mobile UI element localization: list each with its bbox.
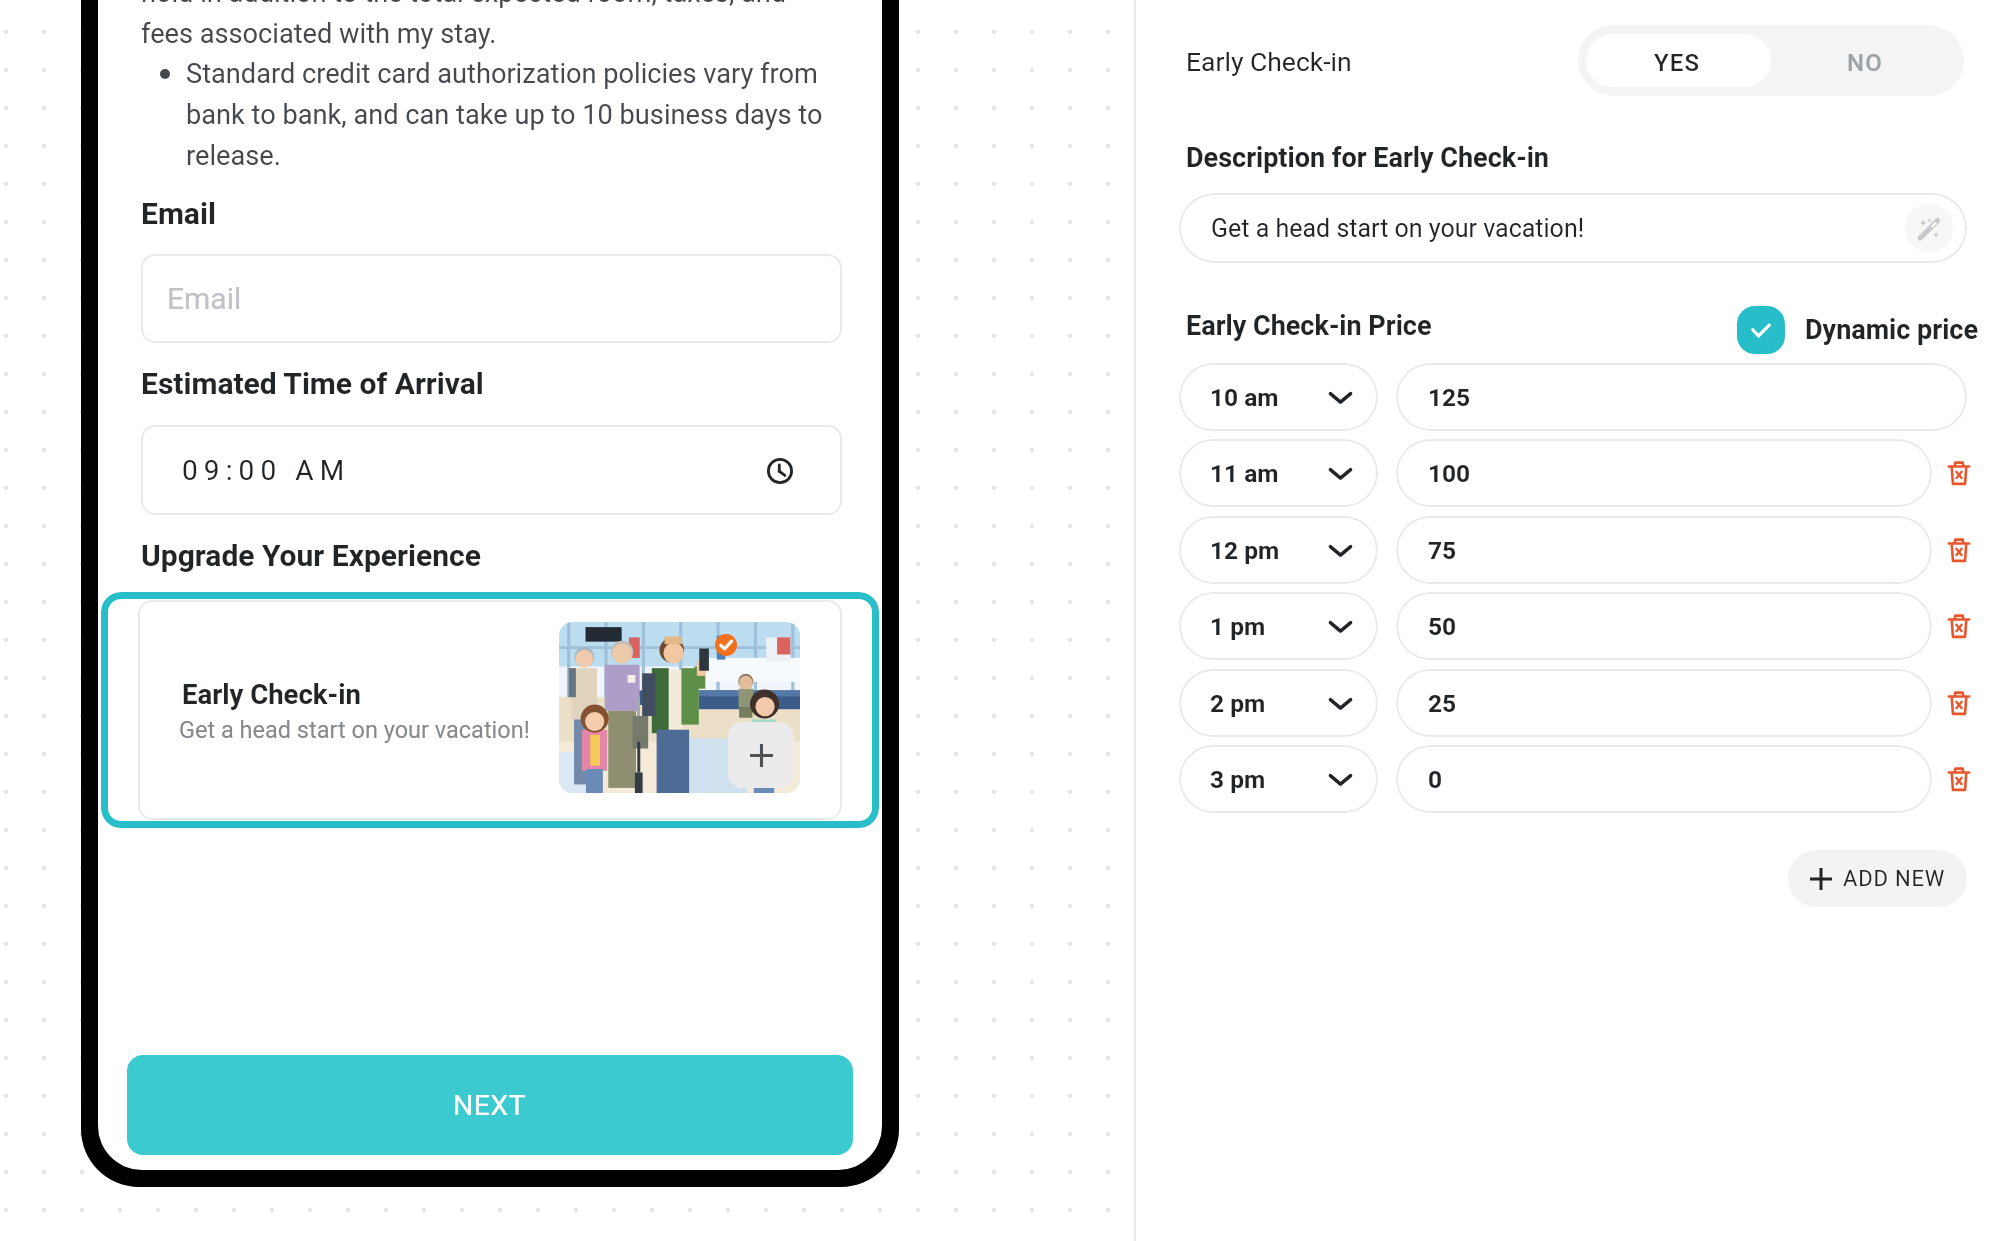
button[interactable]: Get a head start on your vacation! [1179, 193, 1967, 263]
button[interactable]: 0 [1396, 745, 1932, 813]
staticText: NO [1847, 49, 1884, 77]
button[interactable]: 125 [1396, 363, 1967, 431]
staticText: 11 am [1210, 459, 1279, 488]
staticText: ADD NEW [1843, 866, 1946, 892]
staticText: Estimated Time of Arrival [141, 366, 484, 401]
staticText: NEXT [453, 1089, 527, 1122]
button[interactable]: Add upgrade [728, 722, 794, 788]
button[interactable]: NEXT [127, 1055, 853, 1155]
staticText: 0 [1428, 765, 1443, 794]
button[interactable]: Delete [1942, 456, 1976, 490]
button[interactable]: 25 [1396, 669, 1932, 737]
button[interactable]: 75 [1396, 516, 1932, 584]
staticText: 125 [1428, 383, 1471, 412]
staticText: Email [167, 281, 242, 316]
button[interactable]: ADD NEW [1788, 850, 1967, 907]
staticText: Early Check-in [1186, 46, 1352, 77]
button[interactable]: 09:00 AM [141, 425, 842, 515]
staticText: Upgrade Your Experience [141, 538, 481, 573]
staticText: 2 pm [1210, 689, 1266, 718]
staticText: Get a head start on your vacation! [179, 716, 530, 744]
staticText: Early Check-in Price [1186, 310, 1432, 342]
button[interactable]: Delete [1942, 609, 1976, 643]
other: Pick time [767, 458, 793, 484]
button[interactable]: Delete [1942, 762, 1976, 796]
button[interactable]: 1 pm [1179, 592, 1378, 660]
staticText: 3 pm [1210, 765, 1266, 794]
button[interactable]: Early Check-in [138, 600, 842, 820]
staticText: Early Check-in [182, 678, 361, 710]
button[interactable]: 11 am [1179, 439, 1378, 507]
staticText: Description for Early Check-in [1186, 142, 1549, 174]
button[interactable]: Email [141, 254, 842, 343]
button[interactable]: NO [1771, 25, 1964, 96]
staticText: Standard credit card authorization polic… [186, 58, 823, 172]
staticText: 100 [1428, 459, 1471, 488]
staticText: Email [141, 196, 216, 231]
staticText: 12 pm [1210, 536, 1280, 565]
button[interactable]: 2 pm [1179, 669, 1378, 737]
button[interactable]: Dynamic price [1737, 306, 1978, 354]
staticText: Dynamic price [1805, 314, 1978, 346]
button[interactable]: 50 [1396, 592, 1932, 660]
button[interactable]: 10 am [1179, 363, 1378, 431]
staticText: hold in addition to the total expected r… [141, 0, 787, 50]
staticText: 25 [1428, 689, 1457, 718]
button[interactable]: Delete [1942, 533, 1976, 567]
button[interactable]: 12 pm [1179, 516, 1378, 584]
button[interactable]: Delete [1942, 686, 1976, 720]
staticText: 09:00 AM [182, 454, 351, 487]
staticText: YES [1654, 49, 1701, 77]
button[interactable]: AI suggest [1905, 204, 1953, 252]
button[interactable]: 3 pm [1179, 745, 1378, 813]
staticText: 50 [1428, 612, 1457, 641]
staticText: 75 [1428, 536, 1457, 565]
staticText: 1 pm [1210, 612, 1266, 641]
staticText: 10 am [1210, 383, 1279, 412]
button[interactable]: YES [1586, 34, 1771, 87]
button[interactable]: 100 [1396, 439, 1932, 507]
staticText: Get a head start on your vacation! [1211, 214, 1585, 243]
